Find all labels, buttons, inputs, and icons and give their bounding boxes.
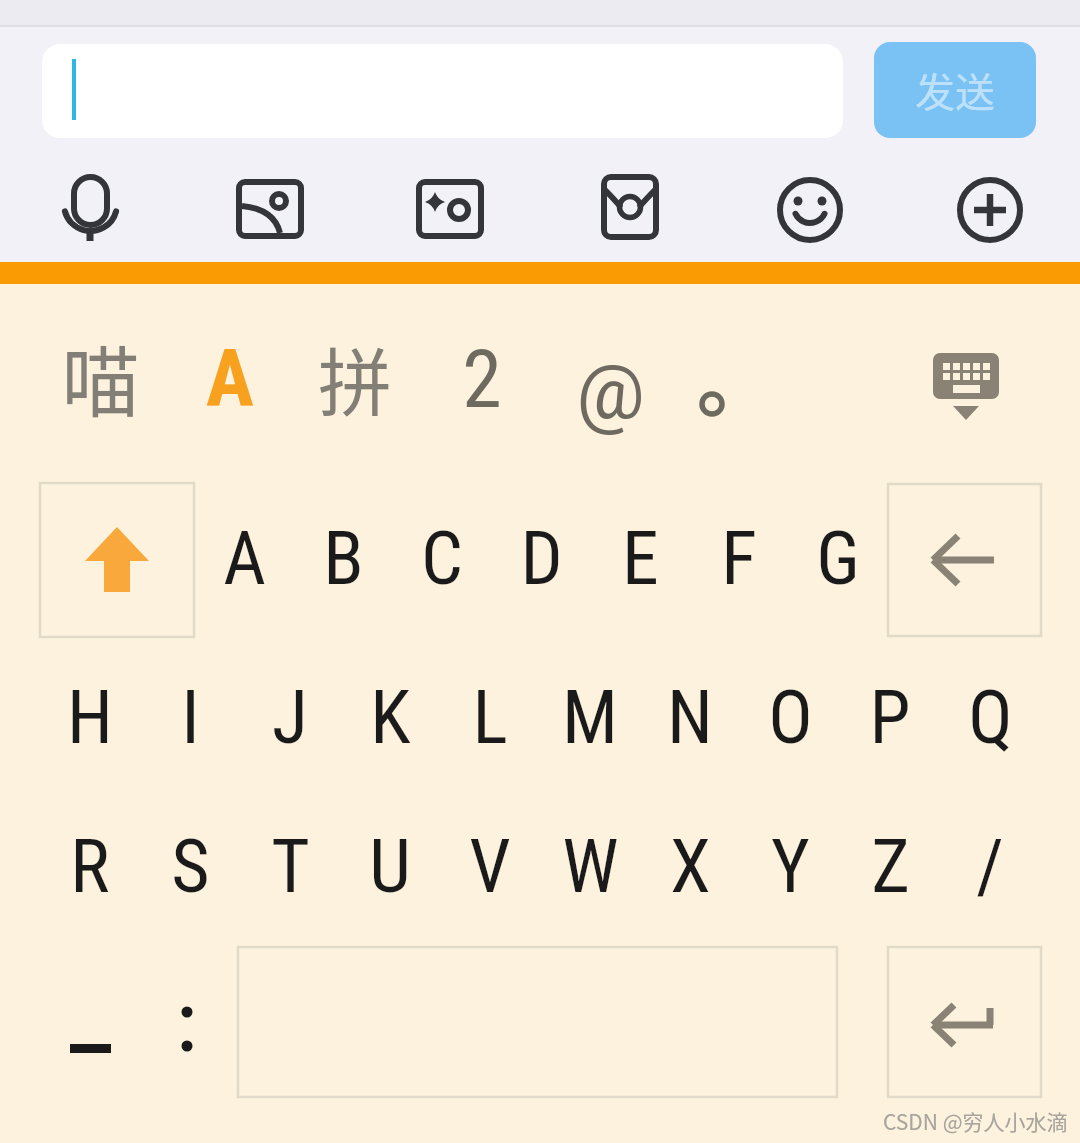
- staticText: C: [421, 515, 463, 602]
- button[interactable]: E: [592, 483, 688, 633]
- staticText: D: [520, 515, 563, 602]
- button[interactable]: Z: [841, 791, 939, 941]
- button[interactable]: M: [541, 642, 639, 792]
- button[interactable]: J: [241, 642, 339, 792]
- button[interactable]: [40, 483, 194, 637]
- staticText: Z: [871, 823, 910, 910]
- button[interactable]: [682, 374, 742, 434]
- button[interactable]: [948, 168, 1032, 252]
- staticText: CSDN @穷人小水滴: [883, 1106, 1068, 1136]
- staticText: O: [768, 674, 813, 761]
- button[interactable]: O: [741, 642, 839, 792]
- button[interactable]: 拼: [275, 292, 435, 462]
- button[interactable]: [42, 44, 843, 138]
- staticText: X: [670, 823, 711, 910]
- button[interactable]: 发送: [874, 42, 1036, 138]
- button[interactable]: X: [641, 791, 739, 941]
- staticText: 拼: [318, 324, 392, 431]
- button[interactable]: [916, 336, 1016, 436]
- button[interactable]: [49, 168, 133, 252]
- button[interactable]: 喵: [20, 292, 180, 462]
- staticText: @: [576, 347, 645, 436]
- button[interactable]: L: [441, 642, 539, 792]
- button[interactable]: N: [641, 642, 739, 792]
- staticText: B: [323, 515, 364, 602]
- staticText: J: [272, 674, 308, 761]
- button[interactable]: [228, 167, 312, 251]
- button[interactable]: B: [295, 483, 391, 633]
- staticText: M: [562, 674, 618, 761]
- button[interactable]: [238, 947, 837, 1097]
- staticText: R: [70, 823, 110, 910]
- staticText: 2: [462, 333, 502, 427]
- staticText: S: [171, 823, 210, 910]
- staticText: Y: [771, 823, 810, 910]
- button[interactable]: U: [341, 791, 439, 941]
- button[interactable]: G: [790, 483, 886, 633]
- button[interactable]: [768, 168, 852, 252]
- button[interactable]: R: [41, 791, 139, 941]
- staticText: A: [223, 515, 266, 602]
- button[interactable]: 2: [402, 295, 562, 465]
- staticText: 喵: [61, 321, 140, 434]
- staticText: H: [67, 674, 113, 761]
- button[interactable]: Y: [741, 791, 839, 941]
- staticText: L: [472, 674, 508, 761]
- button[interactable]: [888, 947, 1041, 1097]
- staticText: T: [271, 823, 310, 910]
- button[interactable]: I: [141, 642, 239, 792]
- staticText: U: [369, 823, 411, 910]
- button[interactable]: /: [941, 791, 1039, 941]
- staticText: Q: [968, 674, 1013, 761]
- button[interactable]: H: [41, 642, 139, 792]
- button[interactable]: @: [530, 306, 690, 476]
- button[interactable]: C: [394, 483, 490, 633]
- staticText: /: [976, 823, 1004, 910]
- button[interactable]: D: [493, 483, 589, 633]
- button[interactable]: Q: [941, 642, 1039, 792]
- button[interactable]: [888, 484, 1041, 636]
- staticText: G: [816, 515, 860, 602]
- button[interactable]: A: [196, 483, 292, 633]
- button[interactable]: T: [241, 791, 339, 941]
- button[interactable]: F: [691, 483, 787, 633]
- button[interactable]: W: [541, 791, 639, 941]
- staticText: E: [622, 515, 659, 602]
- staticText: P: [869, 674, 911, 761]
- staticText: I: [181, 674, 200, 761]
- button[interactable]: [138, 947, 236, 1097]
- staticText: V: [469, 823, 511, 910]
- staticText: W: [562, 823, 619, 910]
- staticText: A: [206, 332, 254, 426]
- button[interactable]: [408, 167, 492, 251]
- button[interactable]: [41, 947, 139, 1097]
- button[interactable]: S: [141, 791, 239, 941]
- button[interactable]: [588, 167, 672, 251]
- staticText: F: [721, 515, 757, 602]
- button[interactable]: V: [441, 791, 539, 941]
- button[interactable]: K: [341, 642, 439, 792]
- button[interactable]: A: [150, 294, 310, 464]
- staticText: 发送: [915, 61, 995, 119]
- staticText: N: [667, 674, 713, 761]
- button[interactable]: P: [841, 642, 939, 792]
- staticText: K: [370, 674, 411, 761]
